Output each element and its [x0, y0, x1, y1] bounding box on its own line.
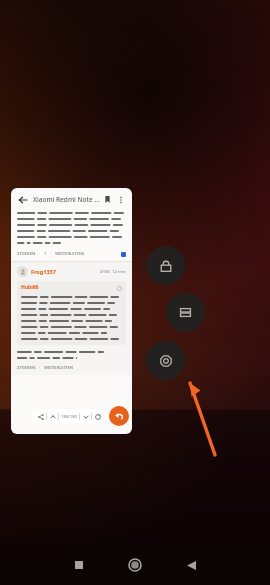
staticText: ·	[50, 251, 52, 257]
button[interactable]: Refresh	[92, 411, 103, 422]
button[interactable]: Back	[174, 548, 208, 582]
staticText: #106 12 min	[100, 269, 126, 275]
button[interactable]: Reply	[109, 406, 129, 426]
button[interactable]: Recent apps	[62, 548, 96, 582]
button[interactable]: WEITERLEITEN	[44, 365, 74, 371]
button[interactable]: Lock app	[146, 246, 185, 285]
button[interactable]: Back	[16, 193, 29, 206]
staticText: ·	[39, 365, 41, 371]
button[interactable]: ZITIEREN	[17, 365, 36, 371]
button[interactable]: Avatar	[17, 266, 28, 277]
button[interactable]: Home	[118, 548, 152, 582]
button[interactable]: Hubi66	[21, 284, 39, 291]
button[interactable]: Bookmark	[101, 193, 114, 206]
button[interactable]: Screenshot	[146, 341, 185, 380]
button[interactable]: Frog1337	[31, 268, 56, 275]
button[interactable]: More options	[114, 193, 127, 206]
button[interactable]: Share	[35, 411, 46, 422]
button[interactable]: Previous	[47, 411, 58, 422]
button[interactable]: Split screen	[166, 293, 205, 332]
button[interactable]: Collapse quote	[116, 285, 122, 291]
button[interactable]: ZITIEREN	[17, 251, 36, 257]
staticText: Xiaomi Redmi Note 8…	[33, 195, 101, 204]
button[interactable]: Back	[11, 188, 132, 434]
button[interactable]: Next	[80, 411, 91, 422]
button[interactable]: 180/180	[61, 414, 77, 420]
button[interactable]: WEITERLEITEN	[55, 251, 85, 257]
button[interactable]: Like	[121, 252, 126, 257]
staticText: 1	[44, 251, 47, 257]
staticText: ·	[39, 251, 41, 257]
